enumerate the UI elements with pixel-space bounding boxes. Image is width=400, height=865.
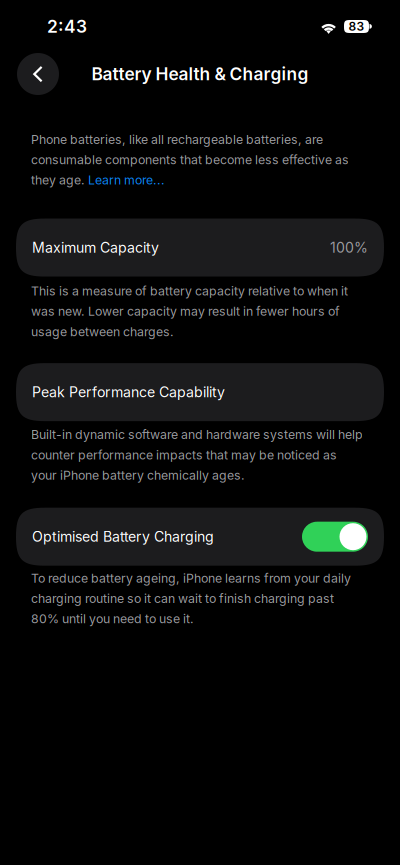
staticText: Battery Health & Charging: [91, 63, 308, 84]
staticText: Maximum Capacity: [32, 239, 159, 256]
staticText: Optimised Battery Charging: [32, 528, 214, 545]
staticText: This is a measure of battery capacity re…: [31, 284, 348, 339]
staticText: To reduce battery ageing, iPhone learns …: [31, 571, 351, 626]
staticText: 2:43: [47, 16, 87, 37]
staticText: 100%: [330, 239, 368, 256]
button[interactable]: Maximum Capacity: [16, 219, 384, 277]
staticText: Built-in dynamic software and hardware s…: [31, 427, 363, 483]
button[interactable]: Peak Performance Capability: [16, 363, 384, 421]
staticText: Peak Performance Capability: [32, 384, 225, 401]
staticText: 83: [348, 19, 364, 34]
button[interactable]: Optimised Battery Charging: [302, 522, 368, 552]
button[interactable]: Back: [17, 53, 59, 95]
staticText: Phone batteries, like all rechargeable b…: [31, 132, 349, 188]
